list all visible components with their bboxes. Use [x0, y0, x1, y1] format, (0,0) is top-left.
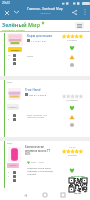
staticText: зоотовары онлайн	[2, 28, 25, 31]
staticText: 980 ₽ / 2 000 ₽	[29, 93, 47, 96]
staticText: 5 и 80	[69, 146, 76, 149]
staticText: Зелёный Мир	[71, 175, 85, 178]
staticText: ещё...	[7, 81, 14, 84]
staticText: Купить	[9, 164, 17, 167]
staticText: 12	[8, 54, 11, 57]
staticText: скачай	[74, 192, 81, 195]
staticText: Зелёный Мир	[2, 21, 41, 28]
button[interactable]: Rating	[62, 94, 83, 99]
staticText: 1 310 ₽ / 2 кг	[31, 39, 47, 42]
staticText: 1	[8, 114, 10, 117]
staticText: 20:43	[2, 1, 10, 5]
button[interactable]: Сравнить	[7, 104, 19, 110]
staticText: Корм	[27, 54, 34, 57]
staticText: отзывов	[68, 154, 77, 157]
staticText: Корм для кошек	[27, 34, 53, 38]
button[interactable]: Биологически активное масло ТТ 60%	[25, 145, 57, 155]
staticText: 2	[8, 171, 10, 174]
button[interactable]: Menu	[75, 22, 84, 29]
button[interactable]: Rating	[62, 34, 83, 39]
staticText: Купить	[11, 48, 20, 51]
staticText: True Hand	[25, 88, 41, 92]
button[interactable]: More options	[80, 7, 90, 17]
staticText: Олег 3 532	[31, 161, 44, 164]
staticText: 1	[8, 175, 10, 178]
staticText: 1	[8, 58, 10, 61]
button[interactable]: Зелёный Мир	[2, 21, 45, 31]
staticText: Биологически активное масло ТТ 60%	[25, 145, 51, 155]
staticText: 3	[8, 118, 10, 121]
button[interactable]: Product photo	[8, 88, 21, 100]
staticText: Главная - Зелёный Мир	[27, 7, 63, 11]
button[interactable]: True Hand	[25, 88, 59, 96]
button[interactable]: Favourite	[69, 167, 75, 174]
button[interactable]: Купить	[7, 163, 19, 168]
button[interactable]: Home	[40, 190, 50, 200]
staticText: Сравнить	[8, 106, 18, 109]
staticText: 0 отзывов	[66, 99, 78, 102]
button[interactable]: QR code	[67, 175, 88, 195]
staticText: zelmir.ru	[40, 11, 51, 14]
staticText: 3 отзыва	[67, 39, 77, 42]
button[interactable]: Favourite	[69, 45, 75, 69]
staticText: Хороший сухой корм, подойдёт в сухом вид…	[27, 167, 54, 176]
button[interactable]: Главная - Зелёный Мир	[22, 7, 68, 14]
button[interactable]: Close tab	[1, 7, 12, 18]
button[interactable]: Tabs	[11, 7, 21, 17]
button[interactable]: Favourite	[69, 105, 75, 129]
button[interactable]: Recents	[58, 190, 68, 200]
button[interactable]: Share	[69, 7, 80, 18]
button[interactable]: Product photo	[7, 33, 23, 46]
button[interactable]: Корм для кошек	[27, 34, 59, 42]
button[interactable]: Product photo	[8, 147, 21, 162]
staticText: Будь первым, кто написал отзыв	[27, 113, 48, 119]
button[interactable]: Купить	[8, 47, 22, 52]
staticText: ещё...	[7, 142, 14, 145]
button[interactable]: Back	[20, 190, 30, 200]
